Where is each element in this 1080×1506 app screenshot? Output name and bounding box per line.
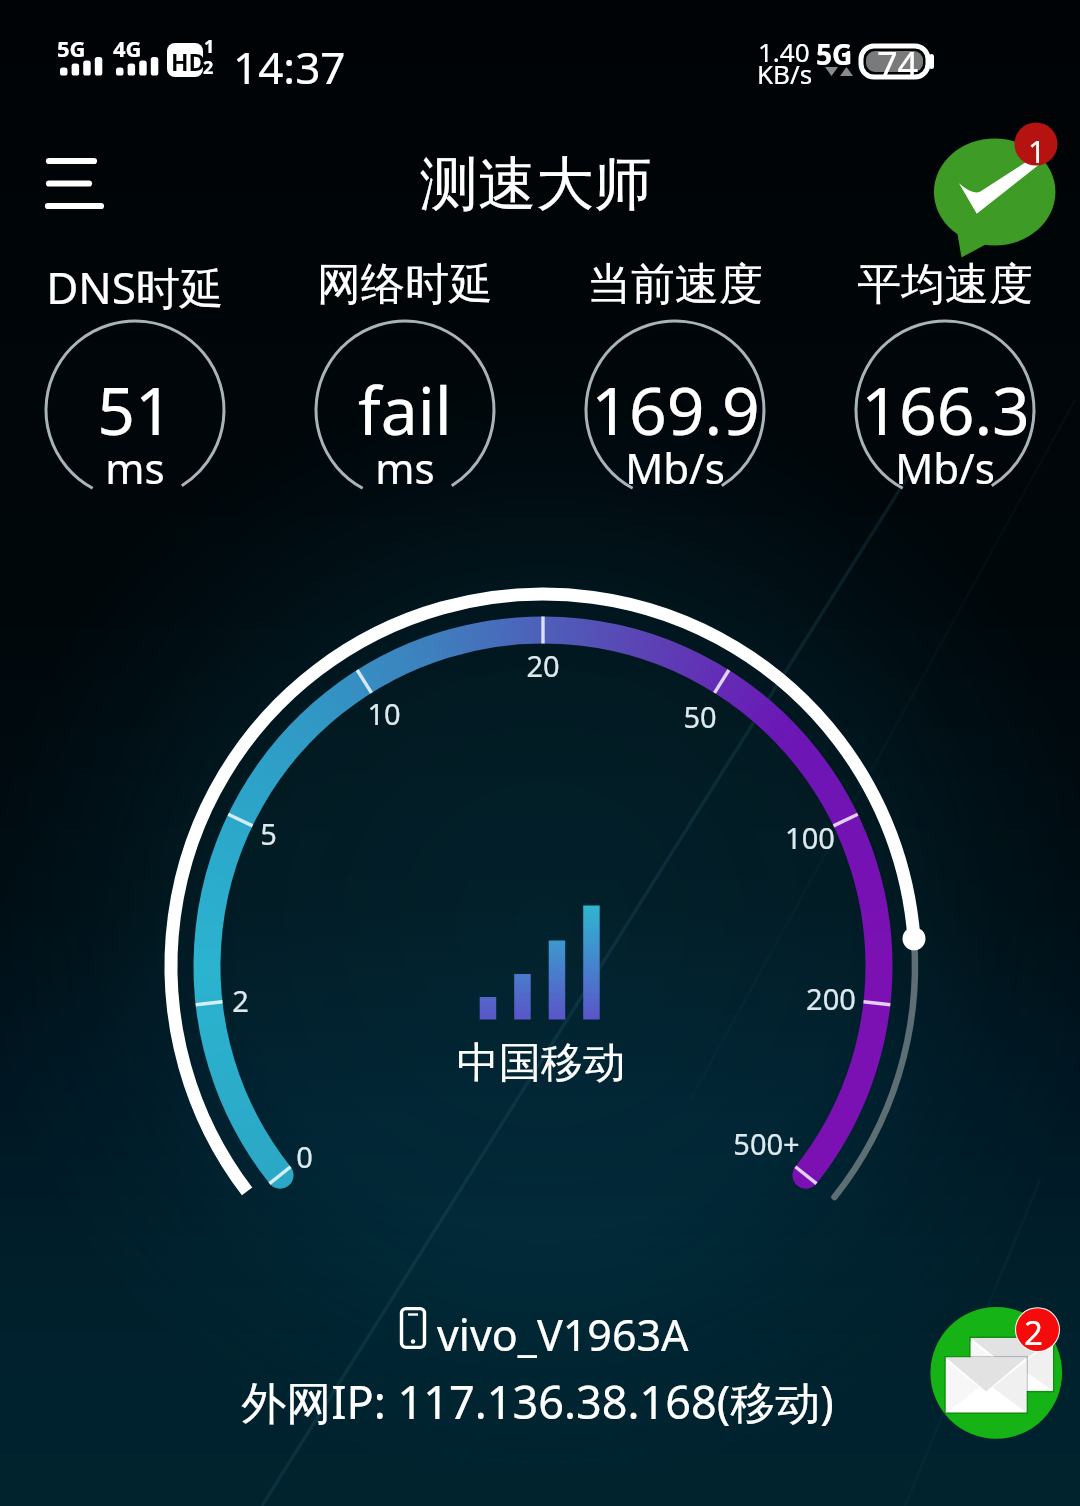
button[interactable] [270, 255, 540, 505]
staticText: 500+ [733, 1124, 800, 1163]
staticText: 0 [296, 1137, 313, 1176]
staticText: 2 [1024, 1310, 1043, 1355]
staticText: 1.40 [758, 34, 810, 69]
staticText: 50 [683, 697, 717, 736]
staticText: ms [105, 439, 165, 496]
button[interactable] [0, 255, 270, 505]
staticText: 1 [1028, 130, 1046, 172]
button[interactable]: Messages [925, 1295, 1075, 1445]
staticText: 4G [113, 33, 142, 63]
staticText: fail [358, 364, 452, 454]
staticText: 51 [97, 364, 173, 454]
staticText: 中国移动 [457, 1037, 625, 1090]
staticText: 74 [877, 40, 919, 89]
staticText: 1 [204, 34, 215, 59]
staticText: 166.3 [861, 364, 1030, 454]
staticText: 20 [526, 646, 560, 685]
staticText: 10 [367, 694, 401, 733]
staticText: 2 [232, 981, 249, 1020]
staticText: KB/s [757, 56, 813, 91]
button[interactable]: Menu [28, 133, 124, 233]
staticText: 外网IP: 117.136.38.168(移动) [241, 1371, 834, 1432]
staticText: 测速大师 [420, 148, 652, 221]
staticText: 2 [203, 55, 214, 80]
staticText: 5G [57, 33, 86, 63]
staticText: 5 [260, 814, 277, 853]
staticText: 1 [843, 46, 853, 69]
button[interactable]: Test result OK [930, 128, 1070, 268]
staticText: 14:37 [233, 37, 346, 97]
staticText: ms [375, 439, 435, 496]
staticText: 网络时延 [317, 257, 493, 312]
button[interactable] [810, 255, 1080, 505]
staticText: 5G [816, 35, 853, 73]
staticText: Mb/s [895, 439, 995, 496]
staticText: Mb/s [625, 439, 725, 496]
staticText: 100 [785, 818, 835, 857]
staticText: DNS时延 [46, 257, 224, 317]
staticText: 200 [806, 979, 856, 1018]
button[interactable] [540, 255, 810, 505]
staticText: HD [171, 46, 206, 77]
staticText: vivo_V1963A [437, 1305, 689, 1364]
staticText: 当前速度 [587, 257, 763, 312]
staticText: 平均速度 [857, 257, 1033, 312]
staticText: 169.9 [591, 364, 760, 454]
